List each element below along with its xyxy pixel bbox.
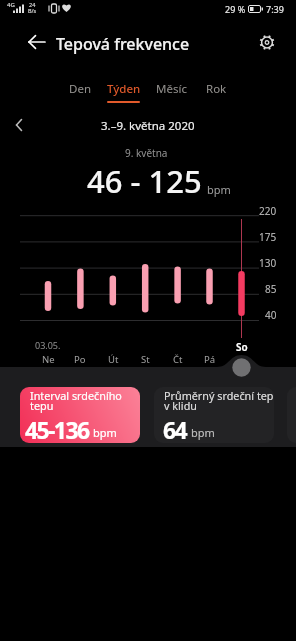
button[interactable] <box>257 32 277 52</box>
button[interactable] <box>22 33 48 53</box>
staticText: 40 <box>265 308 277 322</box>
staticText: 220 <box>259 204 277 218</box>
staticText: Čt <box>173 353 183 366</box>
staticText: 29 % <box>225 3 246 15</box>
staticText: Měsíc <box>156 81 187 97</box>
staticText: 3.–9. května 2020 <box>101 118 195 134</box>
staticText: Rok <box>206 81 227 97</box>
staticText: 130 <box>259 256 277 270</box>
staticText: 4G <box>7 1 15 9</box>
staticText: Út <box>108 353 119 366</box>
staticText: St <box>141 353 150 366</box>
staticText: Týden <box>107 81 141 97</box>
staticText: 9. května <box>125 146 168 160</box>
staticText: tepu <box>30 398 54 413</box>
staticText: B/s <box>28 7 37 14</box>
staticText: 85 <box>265 282 277 296</box>
staticText: 7:39 <box>266 3 284 15</box>
staticText: bpm <box>191 425 215 440</box>
staticText: v klidu <box>164 398 197 413</box>
button[interactable]: Den <box>67 79 93 99</box>
staticText: Ne <box>42 353 55 366</box>
staticText: Po <box>74 353 86 366</box>
staticText: Tepová frekvence <box>56 33 190 55</box>
staticText: Interval srdečního <box>30 388 122 403</box>
staticText: 175 <box>259 230 277 244</box>
staticText: 03.05. <box>35 339 61 351</box>
button[interactable]: Týden <box>105 79 143 99</box>
staticText: 45-136 <box>25 414 89 443</box>
button[interactable]: Měsíc <box>154 79 189 99</box>
button[interactable]: Průměrný srdeční tep <box>154 387 274 443</box>
staticText: bpm <box>93 425 117 440</box>
staticText: 24 <box>29 1 36 8</box>
button[interactable]: Rok <box>204 79 229 99</box>
staticText: 64 <box>163 414 187 443</box>
button[interactable]: Interval srdečního <box>20 387 140 443</box>
staticText: Průměrný srdeční tep <box>164 388 274 403</box>
staticText: bpm <box>207 182 231 197</box>
staticText: Den <box>69 81 91 97</box>
staticText: 46 - 125 <box>87 160 202 202</box>
staticText: Pá <box>204 353 216 366</box>
staticText: So <box>236 340 248 354</box>
